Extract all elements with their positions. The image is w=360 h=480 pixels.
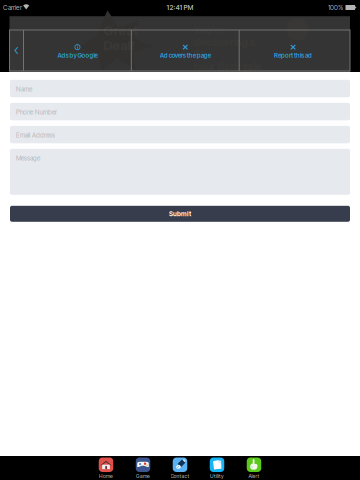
staticText: Home <box>99 473 113 479</box>
staticText: Report this ad <box>274 52 312 59</box>
staticText: You're discovering a 72- <box>194 24 256 61</box>
staticText: Message <box>16 154 40 162</box>
button[interactable]: Utility <box>198 456 235 480</box>
button[interactable]: Report this ad <box>240 30 346 71</box>
staticText: 100% <box>328 3 343 12</box>
button[interactable]: Contact <box>161 456 198 480</box>
button[interactable]: Alert <box>235 456 272 480</box>
staticText: Deal! <box>103 37 134 53</box>
staticText: Game <box>136 473 150 479</box>
staticText: 12:41 PM <box>166 3 193 12</box>
staticText: Ads by Google <box>57 52 97 59</box>
button[interactable]: Email Address <box>10 126 350 143</box>
staticText: Carrier <box>3 3 22 12</box>
button[interactable]: Ads by Google <box>24 30 131 71</box>
button[interactable]: Submit <box>10 206 350 222</box>
button[interactable]: Back <box>9 30 23 71</box>
staticText: Email Address <box>16 131 55 139</box>
staticText: Utility <box>210 473 224 479</box>
staticText: Name <box>16 85 32 93</box>
staticText: hour flash sale x 90 <box>194 60 270 85</box>
staticText: Great <box>103 22 138 38</box>
staticText: Ad covers the page <box>160 52 211 59</box>
button[interactable]: Ad covers the page <box>132 30 239 71</box>
staticText: Submit <box>169 210 191 218</box>
button[interactable]: Home <box>87 456 124 480</box>
button[interactable]: Game <box>124 456 161 480</box>
staticText: Contact <box>170 473 189 479</box>
staticText: Phone Number <box>16 108 57 116</box>
staticText: Alert <box>248 473 259 479</box>
button[interactable]: Phone Number <box>10 103 350 120</box>
